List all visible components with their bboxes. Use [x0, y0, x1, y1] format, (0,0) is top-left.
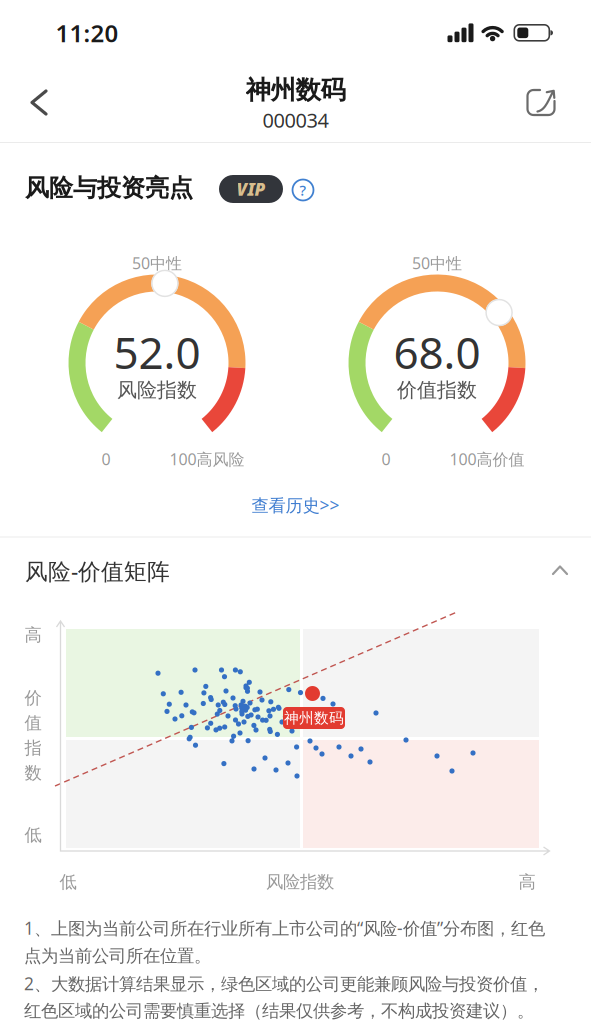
staticText: 52.0 [113, 323, 200, 381]
staticText: 1、上图为当前公司所在行业所有上市公司的“风险-价值”分布图，红色 [24, 916, 545, 939]
staticText: 低 [24, 824, 41, 846]
staticText: 风险指数 [266, 871, 334, 893]
staticText: 神州数码 [284, 709, 344, 727]
staticText: 风险与投资亮点 [25, 173, 193, 203]
button[interactable]: VIP [219, 175, 283, 203]
staticText: 点为当前公司所在位置。 [24, 945, 211, 967]
staticText: 100高价值 [449, 448, 524, 470]
button[interactable]: 查看历史>> [251, 493, 339, 516]
staticText: ? [299, 180, 306, 200]
staticText: 0 [101, 448, 110, 470]
button[interactable]: Help [290, 177, 315, 202]
staticText: 查看历史>> [251, 493, 339, 516]
staticText: 风险指数 [117, 378, 197, 402]
staticText: 神州数码 [245, 74, 345, 105]
staticText: 价 [24, 687, 41, 709]
staticText: 值 [24, 712, 41, 734]
staticText: 100高风险 [169, 448, 244, 470]
staticText: 价值指数 [397, 378, 477, 402]
staticText: 高 [24, 624, 41, 646]
staticText: 红色区域的公司需要慎重选择（结果仅供参考，不构成投资建议）。 [24, 1000, 534, 1022]
button[interactable]: Collapse [540, 550, 580, 590]
staticText: 2、大数据计算结果显示，绿色区域的公司更能兼顾风险与投资价值， [24, 972, 544, 995]
staticText: 000034 [262, 107, 328, 133]
staticText: VIP [236, 177, 265, 200]
staticText: 低 [59, 871, 76, 893]
staticText: 50中性 [132, 252, 182, 274]
staticText: 指 [24, 737, 41, 759]
button[interactable]: Back [16, 80, 60, 124]
staticText: 数 [24, 762, 41, 784]
staticText: 风险-价值矩阵 [25, 556, 170, 586]
button[interactable]: Share [519, 80, 563, 124]
staticText: 高 [518, 871, 535, 893]
staticText: 0 [381, 448, 390, 470]
staticText: 50中性 [412, 252, 462, 274]
staticText: 68.0 [393, 323, 480, 381]
staticText: 11:20 [55, 17, 118, 49]
